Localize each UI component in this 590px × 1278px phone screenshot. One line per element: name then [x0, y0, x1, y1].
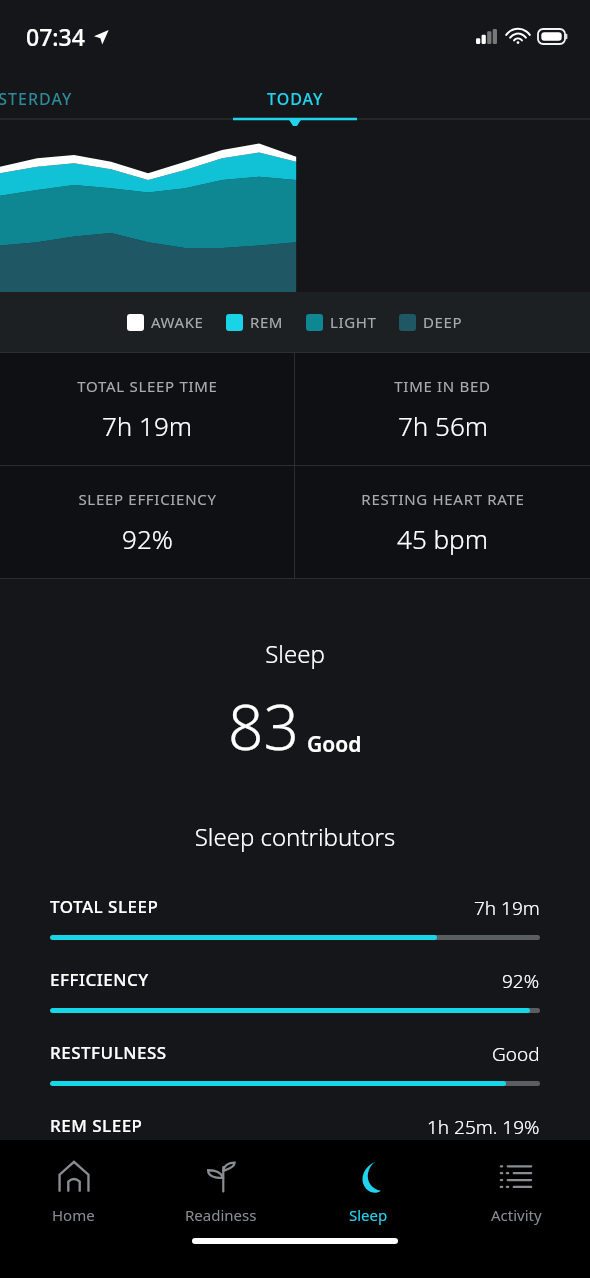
staticText: RESTFULNESS: [50, 1041, 167, 1064]
staticText: Sleep: [349, 1205, 388, 1225]
staticText: EFFICIENCY: [50, 968, 149, 991]
staticText: TOTAL SLEEP TIME: [77, 376, 218, 396]
staticText: 7h 19m: [474, 895, 540, 921]
button[interactable]: RESTING HEART RATE: [295, 466, 590, 578]
button[interactable]: Readiness: [147, 1140, 294, 1238]
staticText: 83: [228, 684, 299, 768]
staticText: Good: [307, 730, 362, 759]
staticText: Sleep: [0, 637, 590, 670]
staticText: Sleep contributors: [0, 820, 590, 853]
button[interactable]: REM: [226, 312, 284, 332]
staticText: YESTERDAY: [0, 88, 73, 110]
staticText: TIME IN BED: [394, 376, 491, 396]
button[interactable]: TIME IN BED: [295, 353, 590, 465]
button[interactable]: Sleep: [294, 1140, 442, 1238]
button[interactable]: LIGHT: [306, 312, 377, 332]
button[interactable]: TODAY: [249, 82, 342, 116]
button[interactable]: YESTERDAY: [0, 82, 87, 116]
button[interactable]: SLEEP EFFICIENCY: [0, 466, 294, 578]
staticText: SLEEP EFFICIENCY: [78, 489, 217, 509]
button[interactable]: EFFICIENCY: [0, 968, 590, 1041]
staticText: Good: [492, 1041, 540, 1067]
button[interactable]: AWAKE: [127, 312, 204, 332]
staticText: Home: [52, 1205, 95, 1225]
staticText: AWAKE: [151, 312, 204, 332]
staticText: RESTING HEART RATE: [361, 489, 525, 509]
staticText: 1h 25m. 19%: [427, 1114, 540, 1140]
staticText: TODAY: [267, 88, 324, 110]
staticText: TOTAL SLEEP: [50, 895, 159, 918]
staticText: 07:34: [26, 21, 85, 52]
button[interactable]: TOTAL SLEEP TIME: [0, 353, 294, 465]
staticText: 7h 19m: [102, 408, 192, 443]
staticText: 92%: [502, 968, 540, 994]
staticText: DEEP: [423, 312, 463, 332]
staticText: 7h 56m: [398, 408, 488, 443]
button[interactable]: TOTAL SLEEP: [0, 895, 590, 968]
button[interactable]: DEEP: [399, 312, 463, 332]
button[interactable]: Home: [0, 1140, 147, 1238]
staticText: Activity: [491, 1205, 542, 1225]
button[interactable]: RESTFULNESS: [0, 1041, 590, 1114]
staticText: REM: [250, 312, 284, 332]
staticText: 92%: [122, 521, 173, 556]
staticText: 45 bpm: [397, 521, 488, 556]
button[interactable]: REM SLEEP: [0, 1114, 590, 1187]
staticText: Readiness: [185, 1205, 257, 1225]
button[interactable]: Activity: [442, 1140, 590, 1238]
staticText: LIGHT: [330, 312, 377, 332]
staticText: REM SLEEP: [50, 1114, 143, 1137]
